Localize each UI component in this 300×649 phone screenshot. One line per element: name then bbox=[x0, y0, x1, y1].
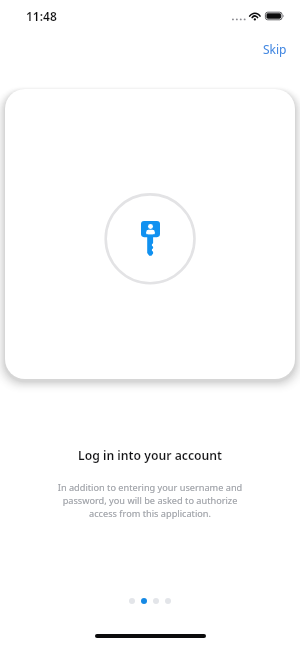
button[interactable]: Page 1 bbox=[129, 598, 135, 604]
button[interactable]: Skip bbox=[257, 38, 293, 60]
button[interactable]: Page 4 bbox=[165, 598, 171, 604]
staticText: In addition to entering your username an… bbox=[48, 481, 252, 520]
staticText: Skip bbox=[263, 41, 287, 57]
staticText: 11:48 bbox=[26, 8, 57, 24]
other: Account key bbox=[141, 221, 160, 256]
button[interactable]: Page 3 bbox=[153, 598, 159, 604]
staticText: Log in into your account bbox=[0, 447, 300, 464]
button[interactable]: Page 2 bbox=[141, 598, 147, 604]
